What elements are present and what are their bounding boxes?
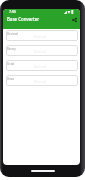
staticText: 7:06 bbox=[9, 9, 17, 14]
staticText: Hexa bbox=[7, 77, 14, 81]
staticText: Enter val bbox=[34, 35, 46, 39]
staticText: Enter val bbox=[34, 65, 46, 69]
staticText: Binary bbox=[7, 47, 16, 51]
staticText: Enter val bbox=[34, 80, 46, 84]
button[interactable]: Decimal bbox=[6, 30, 78, 41]
button[interactable]: Share bbox=[69, 15, 79, 25]
staticText: Enter val bbox=[34, 50, 46, 54]
button[interactable]: Binary bbox=[6, 45, 78, 56]
button[interactable]: Hexa bbox=[6, 75, 78, 86]
button[interactable]: Octal bbox=[6, 60, 78, 71]
staticText: Decimal bbox=[7, 32, 18, 36]
staticText: Octal bbox=[7, 62, 15, 66]
staticText: Base Converter bbox=[7, 16, 40, 22]
